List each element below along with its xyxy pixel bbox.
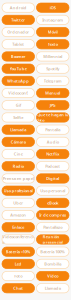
staticText: Videoconf.	[8, 90, 28, 96]
button[interactable]: Millennial	[36, 52, 69, 61]
button[interactable]: Uber	[2, 198, 34, 207]
staticText: YouTube	[10, 66, 27, 71]
button[interactable]: Enlace	[2, 223, 34, 232]
button[interactable]: Cámara	[2, 137, 34, 146]
staticText: Telegram	[44, 78, 62, 83]
staticText: iOS	[50, 5, 56, 10]
button[interactable]: Videoconf.	[2, 88, 34, 98]
button[interactable]: Ordenador	[2, 27, 34, 37]
staticText: Reunión presencial	[43, 234, 63, 245]
staticText: Bombilla	[44, 261, 61, 266]
button[interactable]: Ir de compras	[36, 210, 69, 220]
staticText: Spotify	[46, 66, 59, 71]
staticText: Tablet	[12, 42, 24, 47]
staticText: Manual	[45, 90, 60, 96]
button[interactable]: iOS	[36, 3, 69, 12]
button[interactable]: Amazon	[2, 210, 34, 220]
button[interactable]: Que te hagan la foto	[36, 113, 69, 122]
button[interactable]: Reunión presencial	[36, 235, 69, 244]
staticText: Ir de compras	[39, 212, 66, 218]
staticText: Prensa en papel	[3, 176, 34, 181]
staticText: Batería 100%	[40, 249, 65, 254]
button[interactable]: Videoconferencia	[2, 235, 34, 244]
button[interactable]: WhatsApp	[2, 76, 34, 85]
button[interactable]: Radio	[2, 162, 34, 171]
staticText: Selfie	[13, 115, 23, 120]
staticText: Android	[10, 5, 27, 10]
staticText: Cine	[14, 151, 23, 157]
button[interactable]: Selfie	[2, 113, 34, 122]
button[interactable]: Llamada	[2, 125, 34, 134]
staticText: Twitter	[11, 17, 25, 22]
button[interactable]: Llamada	[36, 284, 69, 293]
button[interactable]: Batería 100%	[36, 247, 69, 256]
button[interactable]: Audio	[36, 137, 69, 146]
staticText: Netflix	[46, 151, 59, 157]
staticText: Cámara	[11, 139, 26, 144]
staticText: Millennial	[43, 54, 62, 59]
staticText: Uber	[13, 200, 23, 205]
button[interactable]: Uso personal	[36, 186, 69, 195]
staticText: Audio	[47, 139, 59, 144]
button[interactable]: Vídeo	[36, 271, 69, 281]
button[interactable]: Batería <10%	[2, 247, 34, 256]
button[interactable]: Texto	[36, 40, 69, 49]
staticText: Chat	[13, 286, 23, 291]
staticText: Podcast	[45, 164, 60, 169]
staticText: Radio	[13, 164, 24, 169]
staticText: Gif	[16, 103, 21, 108]
staticText: Enlace	[12, 225, 24, 230]
staticText: Boomer	[11, 54, 26, 59]
button[interactable]: Boomer	[2, 52, 34, 61]
button[interactable]: Tablet	[2, 40, 34, 49]
button[interactable]: Gif	[2, 101, 34, 110]
staticText: Ordenador	[7, 29, 29, 35]
button[interactable]: Manual	[36, 88, 69, 98]
button[interactable]: Móvil	[36, 27, 69, 37]
staticText: Llamada	[45, 286, 61, 291]
button[interactable]: Netflix	[36, 149, 69, 159]
button[interactable]: Podcast	[36, 162, 69, 171]
button[interactable]: JPG	[36, 101, 69, 110]
staticText: eBook	[47, 200, 58, 205]
staticText: Uso profesional	[4, 188, 33, 193]
staticText: Pantalla	[45, 127, 60, 132]
button[interactable]: Pantalla	[36, 125, 69, 134]
button[interactable]: Spotify	[36, 64, 69, 73]
staticText: Móvil	[48, 29, 58, 35]
button[interactable]: Bombilla	[36, 259, 69, 268]
button[interactable]: Twitter	[2, 15, 34, 24]
staticText: WhatsApp	[7, 78, 29, 83]
button[interactable]: Chat	[2, 284, 34, 293]
button[interactable]: Led	[2, 259, 34, 268]
staticText: Uso personal	[40, 188, 65, 193]
button[interactable]: Prensa en papel	[2, 174, 34, 183]
button[interactable]: Pantallazo	[36, 223, 69, 232]
staticText: JPG	[50, 103, 56, 108]
staticText: Foto	[14, 273, 22, 279]
staticText: Que te hagan la foto	[37, 112, 68, 123]
button[interactable]: Cine	[2, 149, 34, 159]
staticText: Amazon	[10, 212, 26, 218]
staticText: Digital	[46, 176, 59, 181]
button[interactable]: Digital	[36, 174, 69, 183]
button[interactable]: YouTube	[2, 64, 34, 73]
staticText: Led	[15, 261, 22, 266]
staticText: Vídeo	[47, 273, 58, 279]
staticText: Llamada	[10, 127, 26, 132]
staticText: Texto	[48, 42, 58, 47]
staticText: Videoconferencia	[2, 234, 34, 245]
staticText: Pantallazo	[43, 225, 62, 230]
button[interactable]: Android	[2, 3, 34, 12]
button[interactable]: eBook	[36, 198, 69, 207]
staticText: Instagram	[42, 17, 63, 22]
button[interactable]: Instagram	[36, 15, 69, 24]
button[interactable]: Telegram	[36, 76, 69, 85]
button[interactable]: Foto	[2, 271, 34, 281]
staticText: Batería <10%	[6, 249, 31, 254]
button[interactable]: Uso profesional	[2, 186, 34, 195]
